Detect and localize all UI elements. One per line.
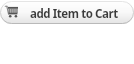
button[interactable]: add Item to Cart [0, 1, 134, 24]
staticText: add Item to Cart [30, 6, 118, 22]
